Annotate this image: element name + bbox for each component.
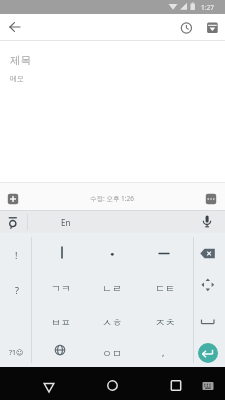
button[interactable]	[96, 369, 128, 399]
button[interactable]: ㅂㅍ	[34, 306, 87, 339]
button[interactable]	[0, 211, 27, 233]
staticText: ㅇㅁ	[102, 347, 122, 360]
button[interactable]	[193, 303, 225, 336]
button[interactable]: ?1☺	[1, 336, 32, 369]
staticText: ?1☺	[9, 348, 24, 358]
staticText: ㄴㄹ	[102, 282, 122, 295]
staticText: ㄷㅌ	[155, 282, 175, 295]
button[interactable]	[33, 335, 86, 367]
button[interactable]	[139, 237, 192, 269]
button[interactable]: 제목	[10, 52, 140, 68]
staticText: 제목	[10, 54, 31, 67]
button[interactable]: En	[41, 211, 91, 233]
button[interactable]: !	[1, 238, 32, 271]
button[interactable]	[4, 190, 22, 208]
button[interactable]: ,	[137, 335, 190, 368]
staticText: 메모	[10, 74, 24, 83]
button[interactable]: 메모	[10, 72, 140, 84]
staticText: 수정: 오후 1:26	[90, 194, 135, 203]
button[interactable]: ?	[1, 273, 32, 306]
button[interactable]	[86, 237, 139, 269]
button[interactable]	[193, 269, 225, 302]
staticText: ㅅㅎ	[102, 316, 122, 329]
button[interactable]: ㄴㄹ	[85, 272, 138, 305]
staticText: ?	[15, 284, 19, 296]
button[interactable]	[196, 373, 220, 397]
button[interactable]: ㄷㅌ	[138, 272, 191, 305]
staticText: ,	[162, 346, 165, 358]
button[interactable]: ㅅㅎ	[85, 306, 138, 339]
staticText: 1:27	[201, 3, 214, 12]
button[interactable]	[196, 211, 218, 233]
staticText: ㅈㅊ	[155, 316, 175, 329]
button[interactable]	[202, 14, 223, 40]
button[interactable]: ㄱㅋ	[34, 272, 87, 305]
button[interactable]	[202, 190, 220, 208]
button[interactable]	[193, 237, 225, 270]
staticText: ㄱㅋ	[51, 282, 71, 295]
button[interactable]	[198, 343, 218, 363]
button[interactable]	[33, 369, 65, 399]
staticText: !	[15, 249, 18, 261]
button[interactable]	[176, 14, 197, 40]
button[interactable]: ㅈㅊ	[138, 306, 191, 339]
button[interactable]	[33, 237, 86, 269]
staticText: En	[61, 217, 71, 228]
button[interactable]	[160, 369, 192, 399]
staticText: ㅂㅍ	[51, 316, 71, 329]
button[interactable]	[0, 14, 30, 40]
button[interactable]: ㅇㅁ	[85, 337, 138, 370]
